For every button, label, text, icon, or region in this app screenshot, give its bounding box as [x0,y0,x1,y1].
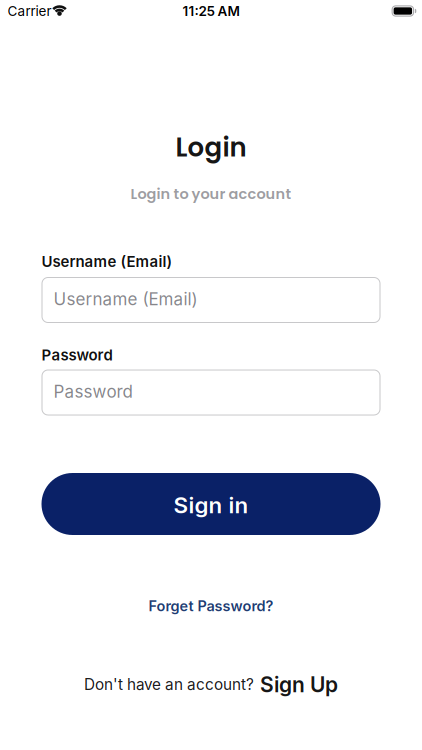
staticText: 11:25 AM [182,3,239,19]
staticText: Forget Password? [148,597,273,615]
button[interactable]: Username (Email) [41,277,380,323]
button[interactable]: Sign in [0,473,422,535]
button[interactable]: Forget Password? [148,597,273,615]
staticText: Carrier [7,3,51,19]
staticText: Password [41,346,112,364]
staticText: Sign Up [260,672,338,697]
staticText: Password [53,381,132,402]
staticText: Login to your account [130,184,291,204]
staticText: Sign in [173,491,248,519]
staticText: Username (Email) [53,289,197,309]
button[interactable]: Password [41,369,380,415]
staticText: Username (Email) [41,252,172,270]
button[interactable]: Sign Up [260,672,338,697]
staticText: Don't have an account? [84,675,254,694]
staticText: Login [175,129,246,166]
